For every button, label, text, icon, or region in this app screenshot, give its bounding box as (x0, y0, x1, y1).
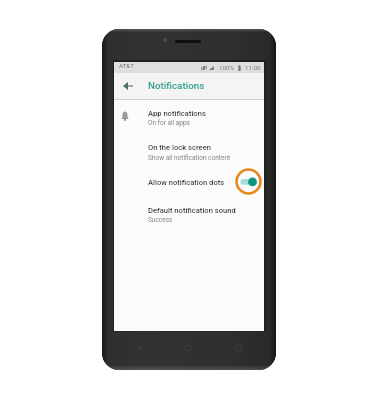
staticText: Allow notification dots (148, 178, 225, 187)
staticText: Default notification sound (148, 206, 236, 215)
button[interactable]: App notifications (114, 103, 264, 128)
staticText: App notifications (148, 109, 206, 118)
button[interactable]: Recent apps (234, 343, 244, 353)
staticText: On the lock screen (148, 143, 211, 152)
staticText: AT&T (119, 62, 134, 69)
button[interactable]: Default notification sound (114, 201, 264, 225)
staticText: 11:00 (245, 64, 261, 71)
button[interactable]: Home (183, 343, 193, 353)
staticText: Success (148, 216, 173, 224)
button[interactable]: On the lock screen (114, 138, 264, 162)
staticText: Show all notification content (148, 154, 231, 162)
button[interactable]: Navigate up (120, 77, 135, 95)
staticText: 100% (219, 64, 234, 71)
staticText: Notifications (148, 80, 205, 91)
button[interactable]: Allow notification dots (114, 169, 264, 195)
staticText: On for all apps (148, 119, 190, 127)
button[interactable]: Allow notification dots toggle (235, 168, 262, 195)
